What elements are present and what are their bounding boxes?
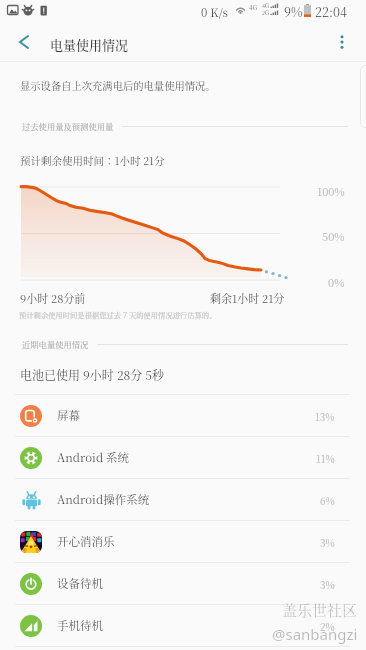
button[interactable]: 设备待机 <box>0 563 366 604</box>
staticText: 手机待机 <box>57 617 103 634</box>
staticText: 预计剩余使用时间是根据您过去 7 天的使用情况进行估算的。 <box>19 310 217 320</box>
staticText: 电池已使用 9小时 28分 5秒 <box>20 366 165 383</box>
staticText: 2% <box>320 619 335 633</box>
staticText: 0 K/s <box>201 4 228 21</box>
button[interactable]: Android操作系统 <box>0 479 366 520</box>
staticText: 电量使用情况 <box>50 35 129 54</box>
staticText: 盖乐世社区 <box>282 599 358 621</box>
staticText: 6% <box>320 493 335 507</box>
staticText: 剩余1小时 21分 <box>210 290 285 306</box>
staticText: 3% <box>320 535 335 549</box>
staticText: 100% <box>317 183 345 199</box>
button[interactable]: Back <box>5 22 43 62</box>
staticText: 11% <box>316 451 335 465</box>
button[interactable]: 手机待机 <box>0 605 366 646</box>
staticText: 开心消消乐 <box>57 533 115 550</box>
staticText: 近期电量使用情况 <box>22 338 89 350</box>
staticText: 22:04 <box>315 3 347 21</box>
button[interactable]: More options <box>327 22 357 62</box>
staticText: @sanbangzi <box>272 624 358 644</box>
button[interactable]: Android 系统 <box>0 437 366 478</box>
button[interactable]: 开心消消乐 <box>0 521 366 562</box>
staticText: 0% <box>328 274 345 290</box>
button[interactable]: 屏幕 <box>0 395 366 436</box>
staticText: 9% <box>284 3 303 21</box>
staticText: 预计剩余使用时间：1小时 21分 <box>20 153 165 168</box>
staticText: 4G <box>262 2 270 10</box>
staticText: 50% <box>322 228 345 244</box>
staticText: 13% <box>315 409 335 423</box>
staticText: 9小时 28分前 <box>20 290 86 306</box>
staticText: 屏幕 <box>57 407 80 424</box>
staticText: 2G <box>262 9 270 17</box>
staticText: Android操作系统 <box>57 491 150 508</box>
staticText: 设备待机 <box>57 575 103 592</box>
staticText: 3% <box>320 577 335 591</box>
staticText: 4G <box>249 3 257 12</box>
staticText: Android 系统 <box>57 449 130 466</box>
staticText: 过去使用量及预测使用量 <box>22 120 114 132</box>
staticText: 显示设备自上次充满电后的电量使用情况。 <box>20 78 216 93</box>
